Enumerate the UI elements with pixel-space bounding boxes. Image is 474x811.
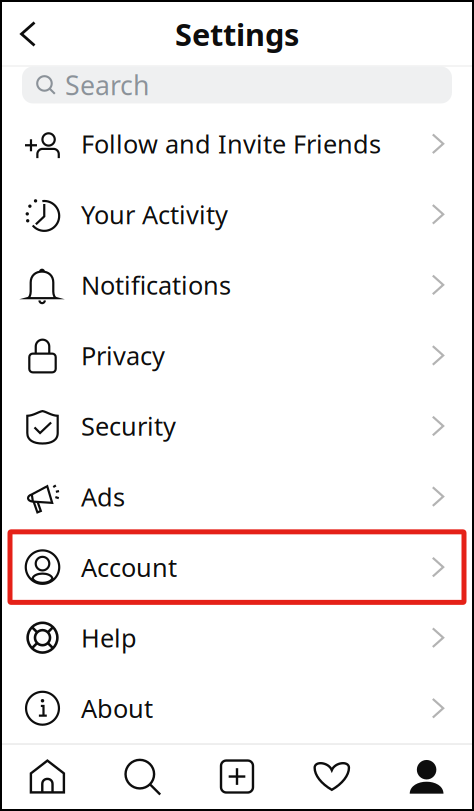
- staticText: Privacy: [81, 339, 165, 372]
- button[interactable]: Search: [95, 743, 190, 809]
- staticText: Your Activity: [81, 197, 228, 231]
- staticText: Follow and Invite Friends: [81, 127, 381, 160]
- button[interactable]: About: [0, 673, 474, 744]
- staticText: Account: [81, 550, 177, 584]
- button[interactable]: Notifications: [0, 250, 474, 320]
- button[interactable]: Security: [0, 391, 474, 461]
- button[interactable]: Back: [0, 11, 42, 57]
- staticText: Settings: [175, 14, 299, 54]
- button[interactable]: Ads: [0, 461, 474, 532]
- button[interactable]: Your Activity: [0, 179, 474, 250]
- button[interactable]: Privacy: [0, 320, 474, 391]
- staticText: Security: [81, 409, 176, 443]
- button[interactable]: Help: [0, 602, 474, 673]
- button[interactable]: Profile: [379, 743, 474, 809]
- staticText: Help: [81, 621, 137, 654]
- button[interactable]: Home: [0, 743, 95, 809]
- staticText: Notifications: [81, 268, 231, 302]
- staticText: Search: [65, 67, 149, 103]
- button[interactable]: Activity: [284, 743, 379, 809]
- button[interactable]: New post: [190, 743, 284, 809]
- staticText: Ads: [81, 480, 125, 513]
- button[interactable]: Follow and Invite Friends: [0, 108, 474, 179]
- button[interactable]: Account: [0, 532, 474, 602]
- staticText: About: [81, 691, 153, 725]
